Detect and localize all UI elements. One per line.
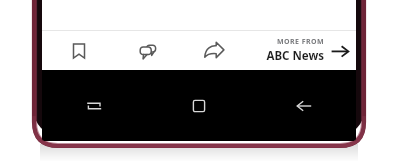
button[interactable]: Recents [42, 70, 146, 141]
button[interactable]: Share [182, 31, 246, 70]
button[interactable]: Back [251, 70, 356, 141]
button[interactable]: Comments [116, 31, 182, 70]
button[interactable]: Bookmark [42, 31, 116, 70]
button[interactable]: MORE FROM [266, 31, 356, 70]
staticText: MORE FROM [276, 37, 324, 47]
other: More from ABC News [330, 41, 350, 61]
button[interactable]: Home [146, 70, 251, 141]
staticText: ABC News [266, 48, 324, 64]
